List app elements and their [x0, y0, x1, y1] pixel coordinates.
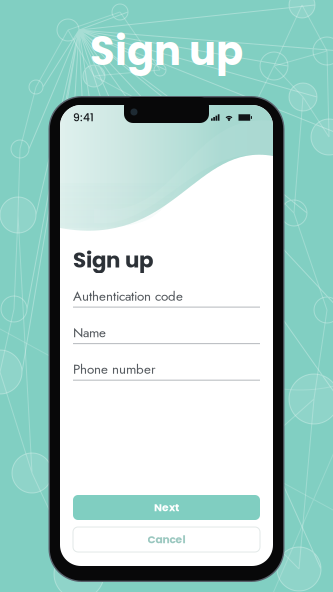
button[interactable]: Next	[73, 495, 260, 520]
staticText: Phone number	[73, 359, 156, 379]
staticText: Next	[154, 500, 179, 515]
staticText: Authentication code	[73, 286, 183, 306]
button[interactable]: Cancel	[73, 527, 260, 552]
staticText: Sign up	[73, 245, 153, 275]
staticText: Cancel	[147, 532, 185, 547]
staticText: Sign up	[90, 23, 243, 79]
staticText: Name	[73, 323, 106, 342]
staticText: 9:41	[73, 110, 94, 125]
